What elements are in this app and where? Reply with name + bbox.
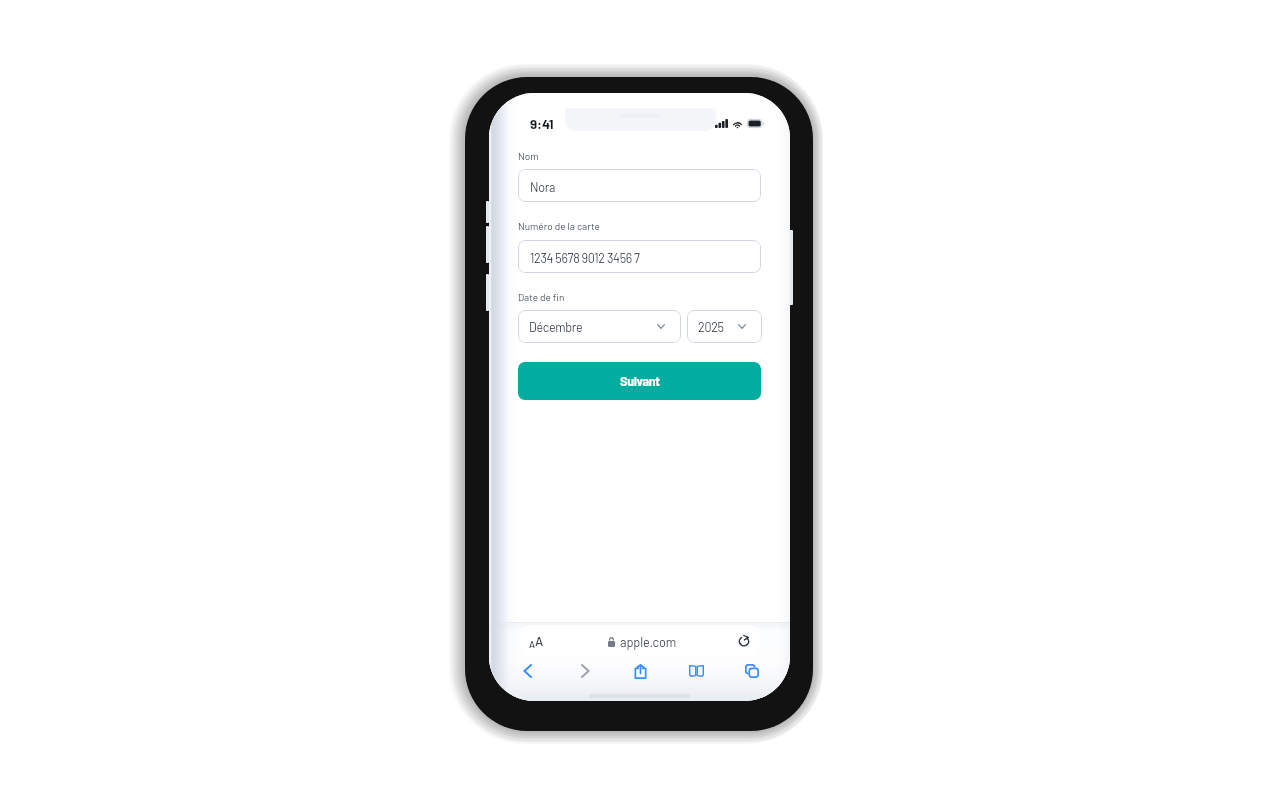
button[interactable]: Nora: [518, 169, 761, 202]
staticText: Nora: [530, 179, 555, 194]
button[interactable]: Forward: [571, 657, 599, 685]
button[interactable]: Décembre: [518, 310, 681, 343]
staticText: 1234 5678 9012 3456 7: [530, 250, 640, 265]
button[interactable]: Page settings: [529, 633, 544, 649]
staticText: Nom: [518, 150, 539, 162]
staticText: A: [535, 633, 544, 649]
staticText: apple.com: [620, 634, 677, 649]
staticText: Date de fin: [518, 291, 565, 303]
button[interactable]: Reload: [736, 633, 752, 649]
button[interactable]: Share: [626, 657, 654, 685]
staticText: 9:41: [530, 115, 554, 131]
button[interactable]: Page settings: [520, 625, 759, 657]
button[interactable]: Back: [513, 657, 541, 685]
button[interactable]: Bookmarks: [682, 657, 710, 685]
button[interactable]: Suivant: [518, 362, 761, 400]
button[interactable]: Tabs: [738, 657, 766, 685]
staticText: Décembre: [529, 319, 583, 334]
staticText: 2025: [698, 319, 724, 334]
staticText: Numéro de la carte: [518, 220, 600, 232]
button[interactable]: 2025: [687, 310, 762, 343]
staticText: Suivant: [620, 373, 660, 388]
staticText: A: [529, 638, 535, 649]
button[interactable]: 1234 5678 9012 3456 7: [518, 240, 761, 273]
